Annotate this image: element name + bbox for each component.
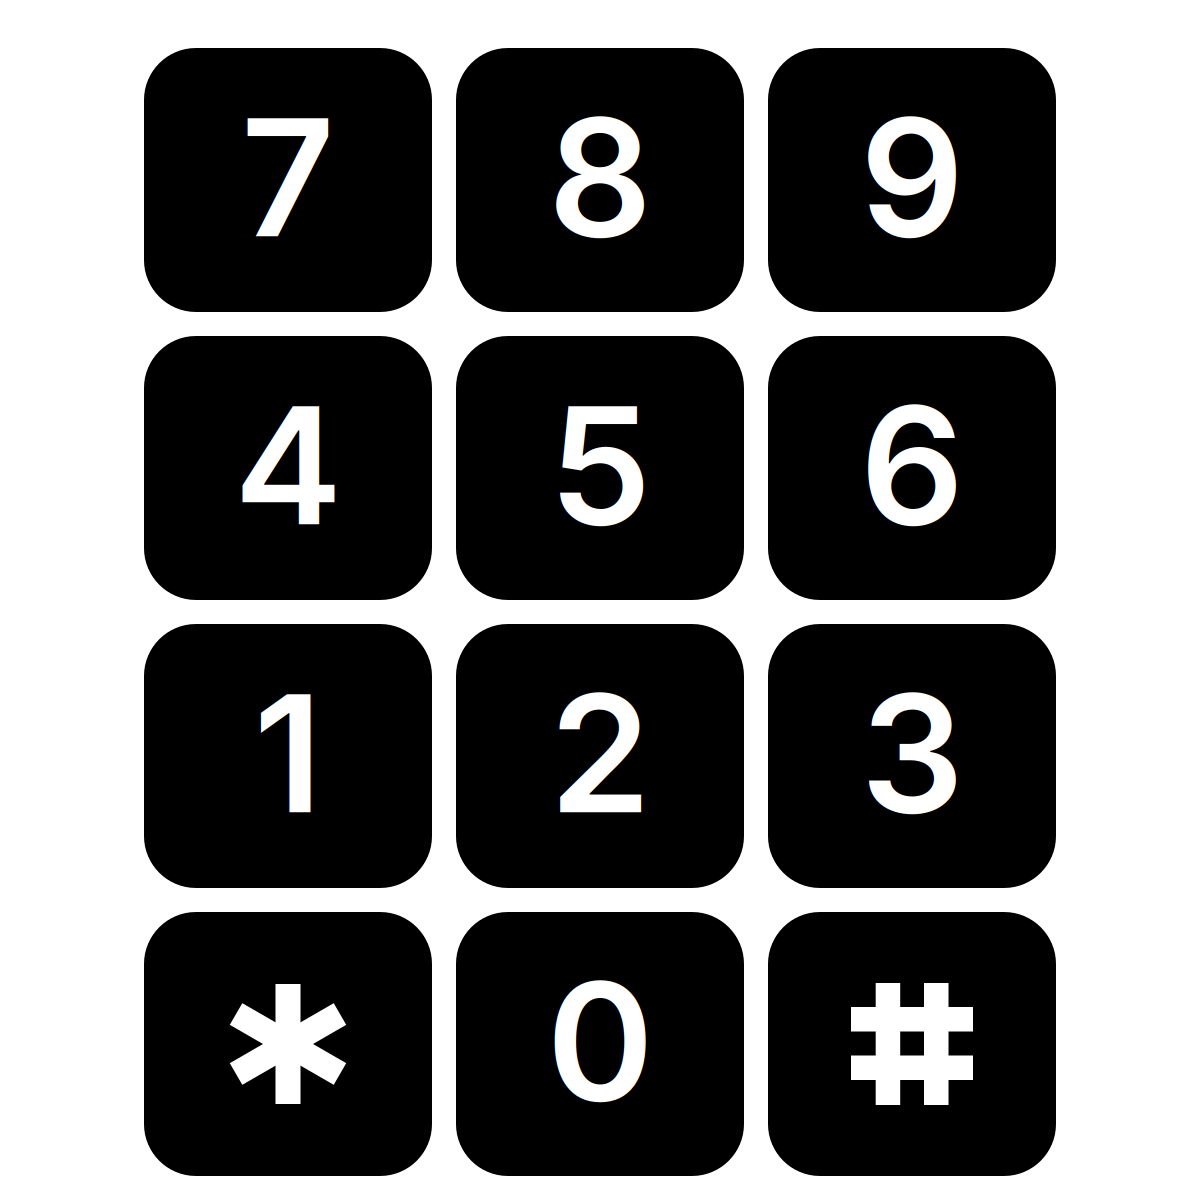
staticText: 0: [546, 943, 653, 1139]
staticText: 3: [860, 655, 963, 851]
staticText: 8: [548, 79, 652, 275]
staticText: 4: [234, 367, 342, 563]
button[interactable]: 6: [768, 336, 1056, 600]
button[interactable]: 3: [768, 624, 1056, 888]
button[interactable]: 8: [456, 48, 744, 312]
button[interactable]: 4: [144, 336, 432, 600]
button[interactable]: 0: [456, 912, 744, 1176]
button[interactable]: 5: [456, 336, 744, 600]
staticText: 2: [549, 655, 650, 851]
staticText: 6: [860, 367, 964, 563]
button[interactable]: 2: [456, 624, 744, 888]
staticText: 9: [860, 79, 964, 275]
button[interactable]: Pound: [768, 912, 1056, 1176]
button[interactable]: 7: [144, 48, 432, 312]
staticText: 1: [253, 655, 322, 851]
staticText: 5: [549, 367, 651, 563]
button[interactable]: 9: [768, 48, 1056, 312]
button[interactable]: Star: [144, 912, 432, 1176]
staticText: 7: [241, 79, 335, 275]
button[interactable]: 1: [144, 624, 432, 888]
